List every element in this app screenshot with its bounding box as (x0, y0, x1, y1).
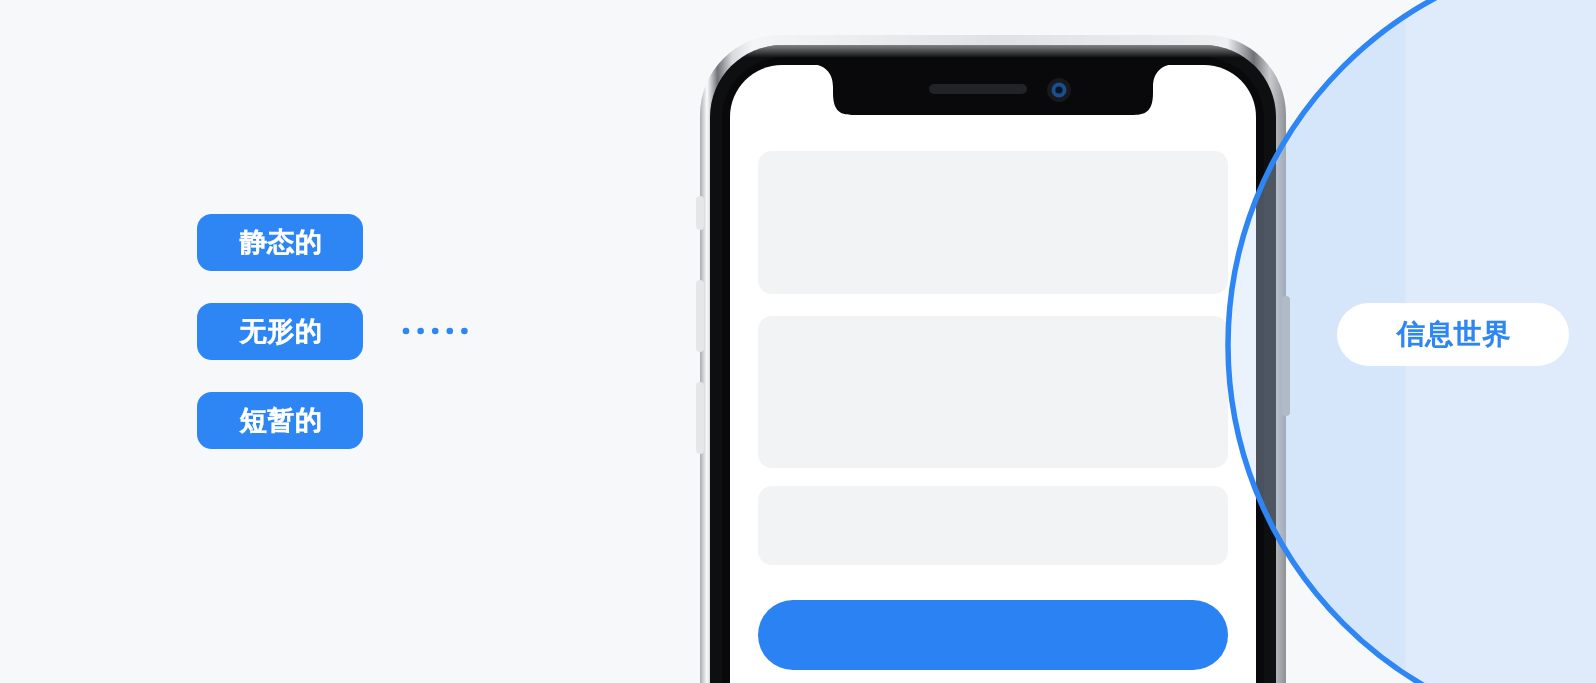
button[interactable]: 信息世界 (1337, 303, 1569, 366)
button[interactable]: Continue (758, 600, 1226, 670)
staticText: 信息世界 (1396, 317, 1510, 352)
button[interactable]: 无形的 (197, 303, 363, 360)
button[interactable]: 静态的 (197, 214, 363, 271)
button[interactable]: 短暂的 (197, 392, 363, 449)
staticText: 短暂的 (239, 404, 322, 438)
staticText: 静态的 (239, 226, 322, 260)
staticText: 无形的 (239, 315, 322, 349)
